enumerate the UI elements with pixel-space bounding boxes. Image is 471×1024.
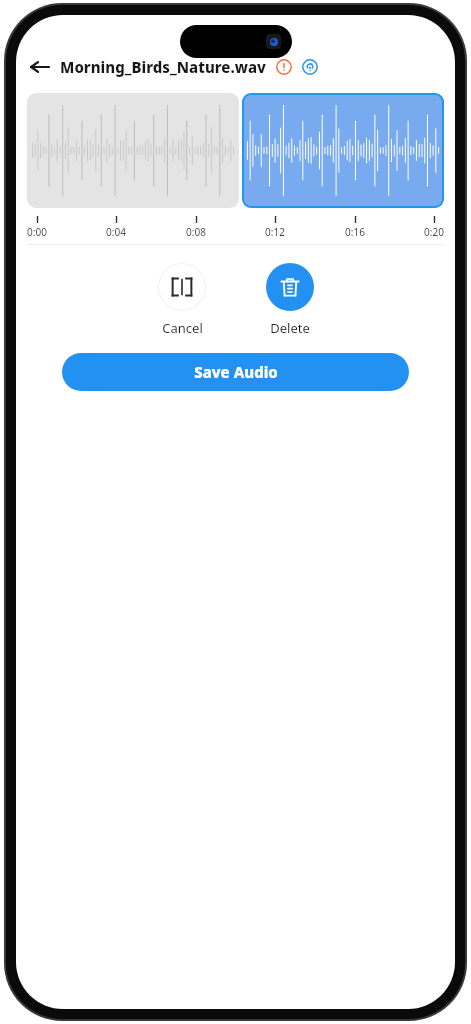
button[interactable]: Save Audio — [62, 353, 409, 391]
button[interactable]: Cancel — [152, 263, 212, 337]
staticText: Morning_Birds_Nature.wav — [60, 57, 266, 77]
button[interactable]: Delete — [260, 263, 320, 337]
button[interactable] — [27, 93, 239, 208]
staticText: 0:12 — [265, 225, 285, 239]
staticText: 0:08 — [186, 225, 206, 239]
staticText: Cancel — [162, 319, 203, 337]
button[interactable]: Help — [302, 59, 318, 75]
button[interactable] — [242, 93, 444, 208]
button[interactable]: Warning — [276, 59, 292, 75]
staticText: 0:00 — [27, 225, 47, 239]
staticText: 0:04 — [106, 225, 126, 239]
staticText: 0:16 — [345, 225, 365, 239]
button[interactable]: Back — [28, 57, 52, 77]
staticText: Delete — [270, 319, 310, 337]
staticText: 0:20 — [424, 225, 444, 239]
staticText: Save Audio — [194, 362, 278, 382]
